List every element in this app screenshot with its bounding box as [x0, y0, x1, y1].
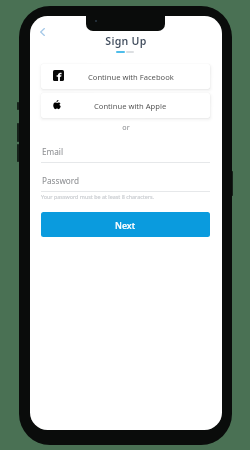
staticText: Continue with Facebook: [88, 72, 174, 82]
staticText: Your password must be at least 8 charact…: [41, 193, 155, 200]
staticText: Next: [115, 219, 136, 231]
staticText: Email: [42, 146, 64, 157]
staticText: Continue with Apple: [94, 101, 167, 111]
button[interactable]: Continue with Facebook: [41, 64, 210, 89]
staticText: Sign Up: [30, 34, 222, 48]
staticText: or: [30, 122, 222, 132]
button[interactable]: Back: [34, 23, 51, 40]
staticText: Password: [42, 175, 80, 186]
button[interactable]: Next: [41, 212, 210, 237]
button[interactable]: Continue with Apple: [41, 93, 210, 118]
